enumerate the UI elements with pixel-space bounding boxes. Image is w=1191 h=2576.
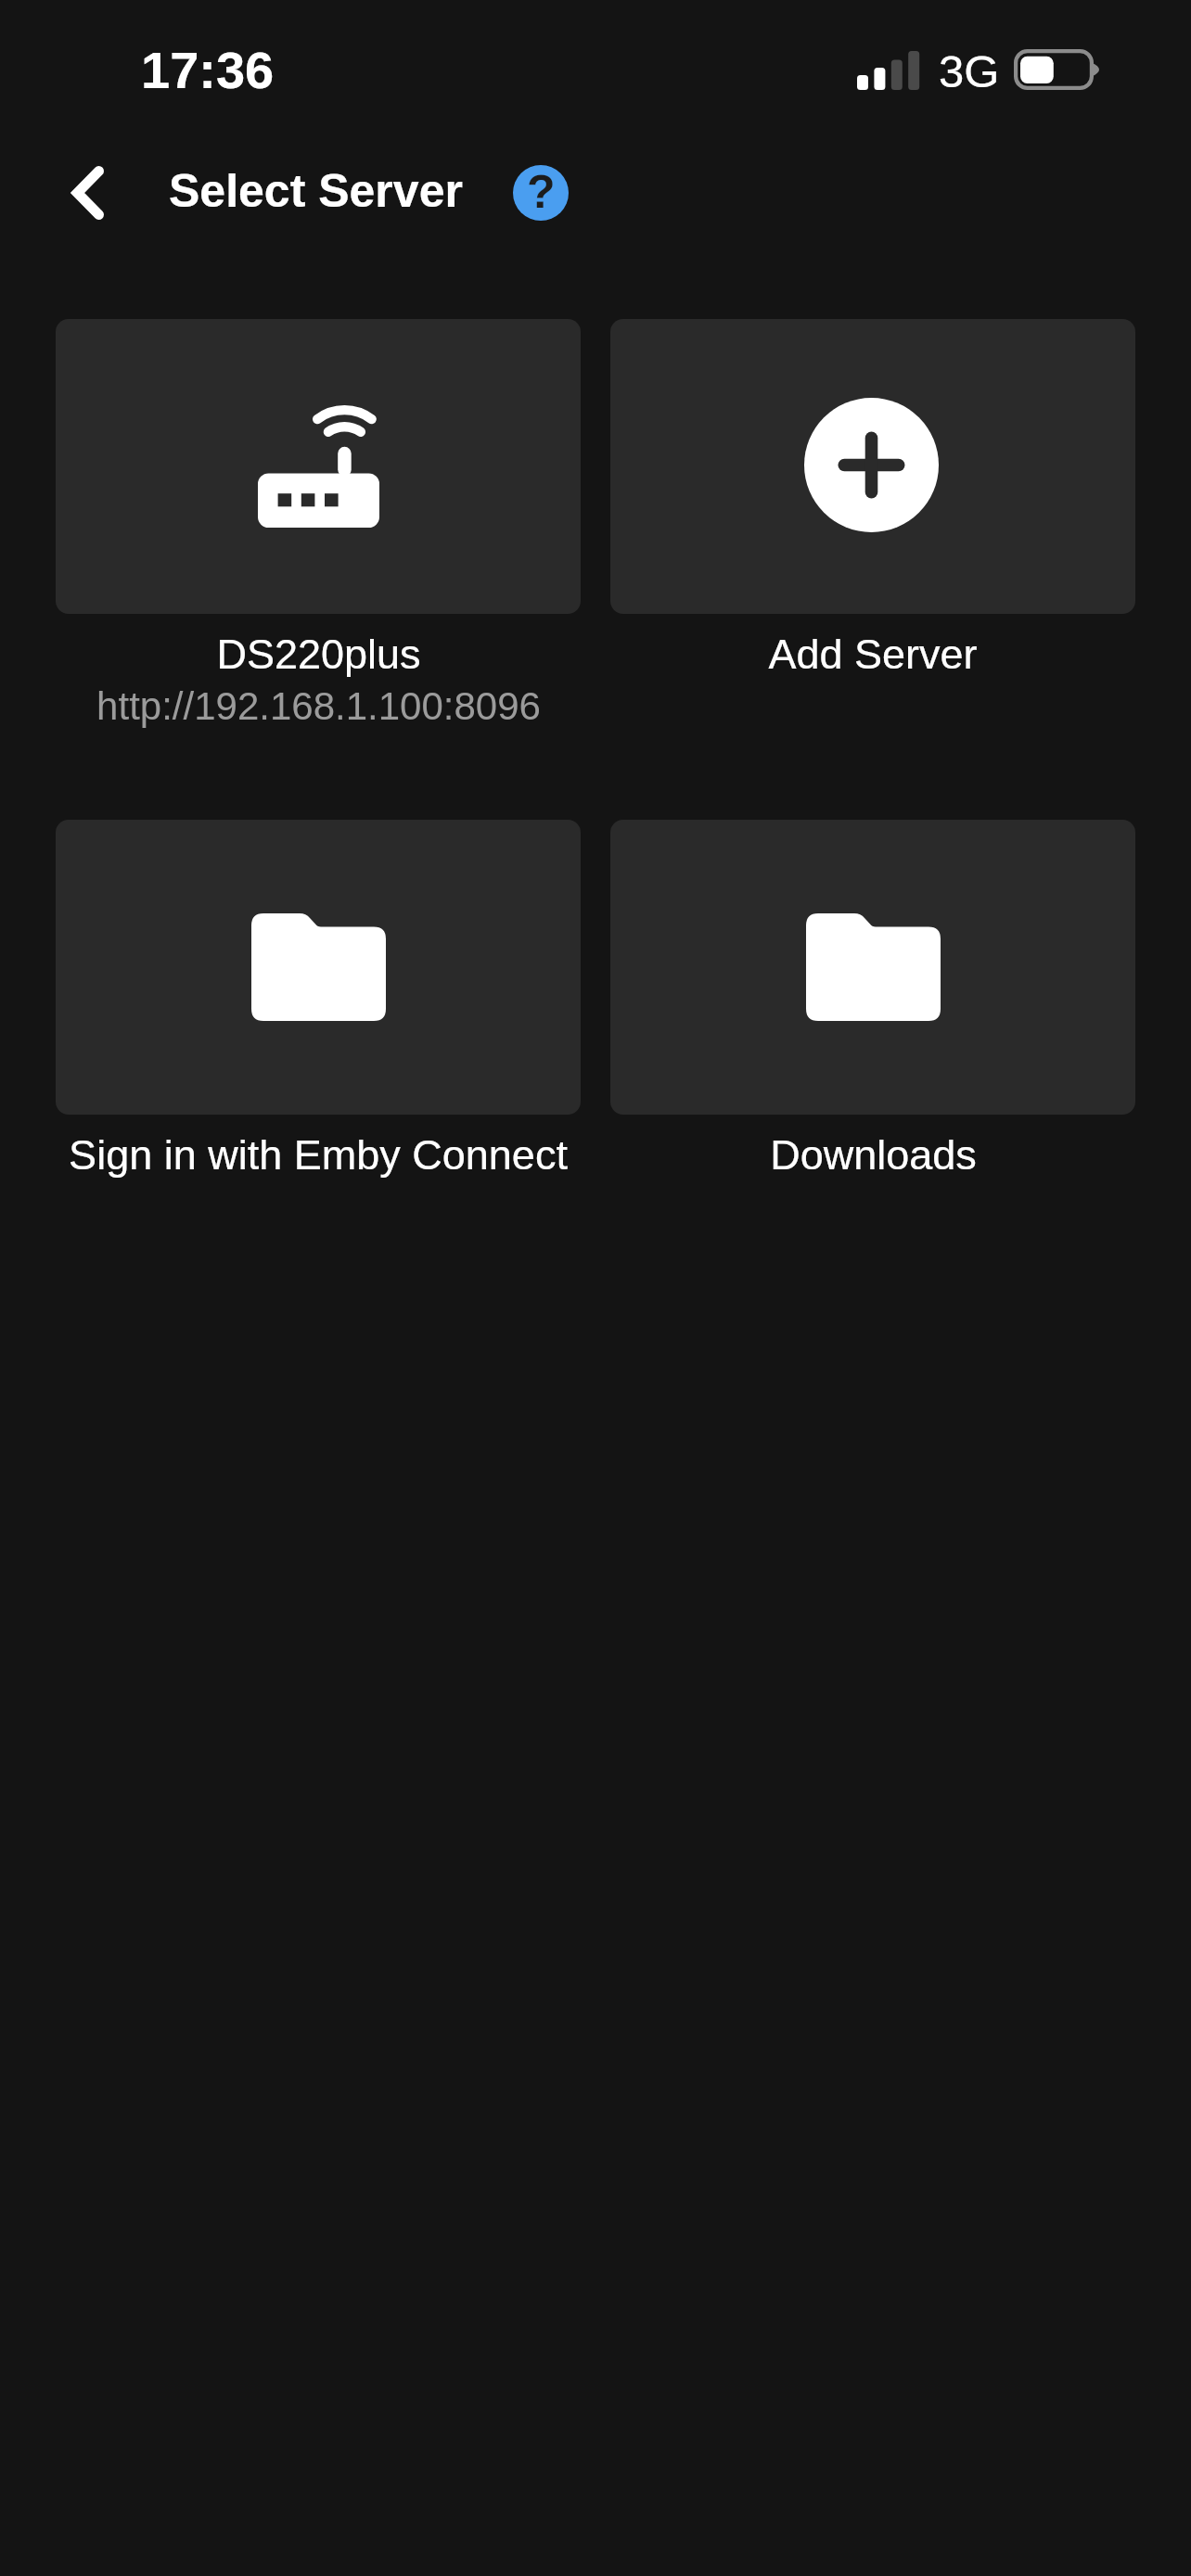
button[interactable]: Help xyxy=(513,165,569,221)
button[interactable]: Sign in with Emby Connect xyxy=(56,820,581,1178)
button[interactable]: Add Server xyxy=(610,319,1135,677)
staticText: http://192.168.1.100:8096 xyxy=(96,684,541,728)
staticText: Downloads xyxy=(770,1131,977,1178)
staticText: DS220plus xyxy=(216,631,421,677)
staticText: Select Server xyxy=(169,165,463,217)
button[interactable]: Back xyxy=(47,152,129,234)
staticText: 17:36 xyxy=(141,41,275,99)
staticText: 3G xyxy=(939,46,1000,97)
staticText: Sign in with Emby Connect xyxy=(69,1131,568,1178)
staticText: Add Server xyxy=(768,631,978,677)
button[interactable]: Downloads xyxy=(610,820,1135,1178)
button[interactable]: DS220plus xyxy=(56,319,581,721)
staticText: ? xyxy=(527,166,556,218)
